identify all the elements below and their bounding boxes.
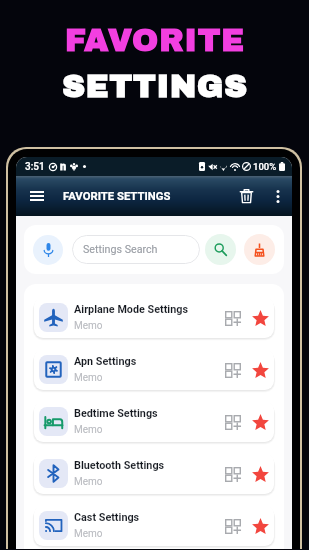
staticText: Bluetooth Settings <box>74 459 165 472</box>
staticText: Airplane Mode Settings <box>74 303 188 316</box>
staticText: Memo <box>74 372 103 384</box>
staticText: Memo <box>74 528 103 540</box>
button[interactable]: Airplane Mode Settings <box>34 297 274 338</box>
staticText: FAVORITE <box>65 23 245 57</box>
button[interactable]: Navigation menu <box>23 182 51 210</box>
button[interactable]: Add shortcut <box>221 514 245 538</box>
staticText: n <box>60 160 67 173</box>
staticText: Settings Search <box>83 243 158 256</box>
button[interactable]: Cast Settings <box>34 505 274 546</box>
staticText: 3:51 <box>25 161 45 173</box>
button[interactable]: Apn Settings <box>34 349 274 390</box>
staticText: 100% <box>253 161 277 172</box>
button[interactable]: Add shortcut <box>221 306 245 330</box>
button[interactable]: More options <box>267 185 289 207</box>
button[interactable]: Voice search <box>33 235 63 265</box>
staticText: Bedtime Settings <box>74 407 158 420</box>
button[interactable]: Add shortcut <box>221 358 245 382</box>
button[interactable]: Search <box>205 234 236 265</box>
button[interactable]: Favorite <box>247 305 273 331</box>
staticText: Memo <box>74 476 103 488</box>
staticText: Apn Settings <box>74 355 137 368</box>
staticText: SETTINGS <box>62 69 248 103</box>
button[interactable]: Add shortcut <box>221 462 245 486</box>
button[interactable]: Add shortcut <box>221 410 245 434</box>
button[interactable]: Clean <box>244 234 275 265</box>
button[interactable]: Settings Search <box>72 235 200 264</box>
button[interactable]: Bedtime Settings <box>34 401 274 442</box>
button[interactable]: Favorite <box>247 461 273 487</box>
button[interactable]: Favorite <box>247 409 273 435</box>
staticText: Memo <box>74 424 103 436</box>
button[interactable]: Bluetooth Settings <box>34 453 274 494</box>
staticText: Cast Settings <box>74 511 140 524</box>
button[interactable]: Delete <box>233 183 259 209</box>
staticText: FAVORITE SETTINGS <box>63 190 171 203</box>
button[interactable]: Favorite <box>247 357 273 383</box>
staticText: Memo <box>74 320 103 332</box>
button[interactable]: Favorite <box>247 513 273 539</box>
